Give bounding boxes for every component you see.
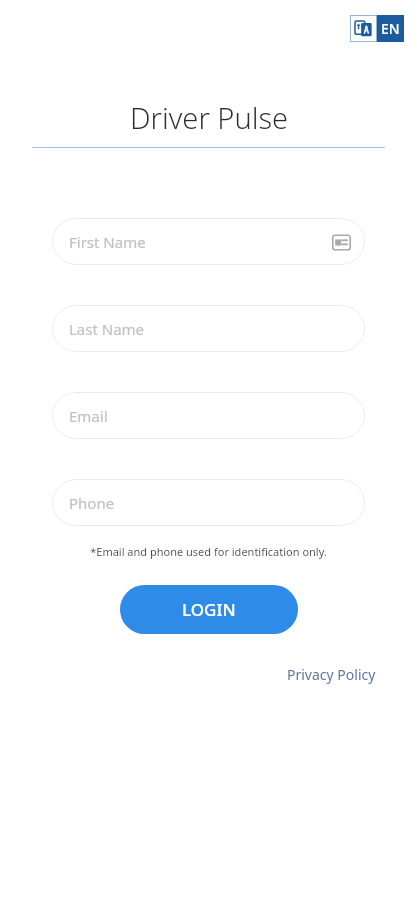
button[interactable]: Last Name xyxy=(52,305,365,352)
staticText: Driver Pulse xyxy=(130,98,288,137)
button[interactable]: Email xyxy=(52,392,365,439)
button[interactable]: First Name xyxy=(52,218,365,265)
button[interactable]: Phone xyxy=(52,479,365,526)
staticText: First Name xyxy=(69,232,146,252)
button[interactable]: Pick from contacts xyxy=(330,231,352,253)
button[interactable]: Change language, English xyxy=(350,15,404,42)
button[interactable]: Privacy Policy xyxy=(285,663,378,686)
staticText: Email xyxy=(69,406,108,426)
staticText: EN xyxy=(381,19,400,38)
staticText: Last Name xyxy=(69,319,145,339)
staticText: Privacy Policy xyxy=(287,665,376,684)
button[interactable]: LOGIN xyxy=(120,585,298,634)
staticText: Phone xyxy=(69,493,115,513)
staticText: *Email and phone used for identification… xyxy=(90,544,327,559)
staticText: LOGIN xyxy=(182,598,236,621)
